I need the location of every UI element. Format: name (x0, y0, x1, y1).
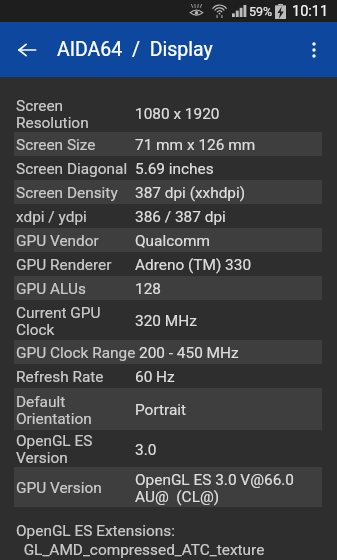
staticText: OpenGL ES Version (16, 432, 138, 467)
staticText: Current GPU Clock (16, 304, 138, 339)
staticText: Screen Resolution (16, 97, 138, 132)
button[interactable]: OpenGL ES Version (0, 430, 337, 467)
staticText: 3.0 (135, 441, 157, 459)
staticText: OpenGL ES 3.0 V@66.0 AU@ (CL@) (135, 471, 315, 506)
staticText: Screen Size (16, 136, 96, 154)
button[interactable]: Refresh Rate (0, 364, 337, 388)
staticText: Portrait (135, 401, 187, 419)
staticText: Refresh Rate (16, 368, 104, 386)
staticText: 387 dpi (xxhdpi) (135, 184, 246, 202)
button[interactable]: Screen Density (0, 180, 337, 204)
staticText: 10:11 (292, 3, 329, 20)
button[interactable]: Screen Size (0, 132, 337, 156)
staticText: GPU Clock Range (16, 344, 136, 362)
staticText: GPU Version (16, 479, 102, 497)
button[interactable]: Current GPU Clock (0, 300, 337, 340)
staticText: 71 mm x 126 mm (135, 136, 256, 154)
staticText: 59% (249, 4, 273, 19)
staticText: 200 - 450 MHz (139, 344, 239, 362)
staticText: 5.69 inches (135, 160, 214, 178)
staticText: OpenGL ES Extensions: (16, 522, 175, 540)
staticText: 1080 x 1920 (135, 105, 220, 123)
staticText: 320 MHz (135, 312, 197, 330)
staticText: Adreno (TM) 330 (135, 256, 252, 274)
staticText: GPU Renderer (16, 256, 112, 274)
staticText: 128 (135, 280, 161, 298)
button[interactable]: GPU Version (0, 467, 337, 507)
staticText: GL_AMD_compressed_ATC_texture (16, 541, 265, 559)
staticText: GPU Vendor (16, 232, 99, 250)
button[interactable]: Back (10, 33, 43, 66)
staticText: 60 Hz (135, 368, 175, 386)
staticText: GPU ALUs (16, 280, 86, 298)
staticText: Qualcomm (135, 232, 211, 250)
button[interactable]: GPU Clock Range (0, 340, 337, 364)
staticText: Screen Density (16, 184, 118, 202)
button[interactable]: xdpi / ydpi (0, 204, 337, 228)
staticText: AIDA64 / Display (57, 38, 213, 61)
staticText: 386 / 387 dpi (135, 208, 226, 226)
button[interactable]: More options (298, 34, 330, 66)
button[interactable]: Screen Resolution (0, 94, 337, 132)
button[interactable]: Default Orientation (0, 388, 337, 430)
staticText: xdpi / ydpi (16, 208, 87, 226)
button[interactable]: Screen Diagonal (0, 156, 337, 180)
staticText: Default Orientation (16, 393, 138, 428)
staticText: Screen Diagonal (16, 160, 128, 178)
button[interactable]: GPU Renderer (0, 252, 337, 276)
button[interactable]: GPU ALUs (0, 276, 337, 300)
button[interactable]: GPU Vendor (0, 228, 337, 252)
